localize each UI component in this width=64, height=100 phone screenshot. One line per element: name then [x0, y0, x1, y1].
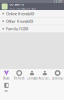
staticText: Your profile [38, 77, 51, 80]
staticText: Free messaging app [9, 7, 36, 10]
staticText: Share [3, 77, 10, 80]
staticText: Family (1/20) [6, 26, 28, 31]
staticText: GO SMS Pro [9, 3, 24, 6]
button[interactable]: Your profile [38, 69, 51, 81]
button[interactable]: Refresh [13, 69, 26, 81]
staticText: Settings [52, 77, 63, 80]
staticText: Other friends(0) [6, 18, 33, 24]
button[interactable]: Family (1/20) [0, 25, 64, 33]
button[interactable]: Share [0, 69, 13, 81]
staticText: 12:00 [53, 0, 62, 3]
staticText: Exit [4, 89, 8, 92]
button[interactable]: Exit [0, 81, 13, 94]
staticText: Refresh [14, 77, 25, 80]
staticText: Contacts [26, 77, 37, 80]
button[interactable]: Settings [51, 69, 64, 81]
button[interactable]: Other friends(0) [0, 18, 64, 25]
button[interactable]: Online friends(0) [0, 10, 64, 18]
button[interactable]: Contacts [26, 69, 38, 81]
staticText: Online friends(0) [6, 11, 34, 16]
